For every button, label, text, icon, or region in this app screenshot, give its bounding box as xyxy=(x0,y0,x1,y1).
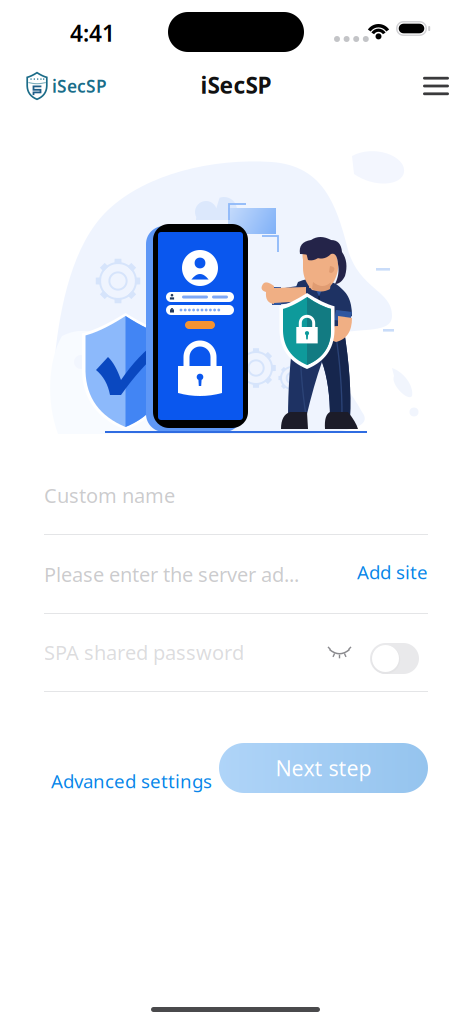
staticText: SPA shared password xyxy=(44,639,244,666)
button[interactable]: iSecSP xyxy=(0,62,140,110)
staticText: Add site xyxy=(357,560,428,584)
button[interactable]: Menu xyxy=(412,62,460,110)
staticText: 4:41 xyxy=(70,18,115,48)
staticText: Next step xyxy=(275,754,371,782)
staticText: iSecSP xyxy=(52,74,107,97)
staticText: Advanced settings xyxy=(51,769,212,793)
button[interactable]: Next step xyxy=(219,743,428,793)
button[interactable]: Add site xyxy=(332,550,428,594)
button[interactable]: Advanced settings xyxy=(51,759,211,803)
staticText: iSecSP xyxy=(200,70,271,100)
staticText: Please enter the server ad... xyxy=(44,561,299,588)
button[interactable]: Enable SPA shared password xyxy=(370,643,419,674)
staticText: Custom name xyxy=(44,482,175,509)
button[interactable]: Show password xyxy=(320,633,360,673)
